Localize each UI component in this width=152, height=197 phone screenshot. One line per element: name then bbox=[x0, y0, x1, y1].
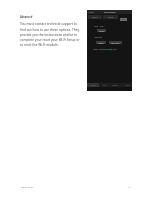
staticText: Scan bbox=[103, 84, 107, 86]
button[interactable]: Settings bbox=[110, 83, 121, 87]
staticText: Refresh bbox=[99, 30, 105, 32]
staticText: Advanced bbox=[120, 18, 127, 21]
staticText: WiFi Advanced bbox=[104, 11, 116, 13]
staticText: Home bbox=[91, 84, 96, 86]
button[interactable]: Scan bbox=[99, 83, 110, 87]
button[interactable]: Back bbox=[88, 11, 94, 14]
staticText: Update bbox=[98, 42, 104, 44]
button[interactable]: Status bbox=[88, 15, 102, 19]
staticText: SSID / Mac bbox=[94, 25, 104, 28]
button[interactable]: Advanced bbox=[120, 18, 127, 21]
button[interactable]: Update bbox=[96, 41, 106, 44]
staticText: Quick Start bbox=[21, 185, 34, 188]
button[interactable]: Refresh bbox=[97, 29, 106, 32]
staticText: Setup bbox=[108, 16, 114, 19]
staticText: You must contact technical support to fi… bbox=[20, 22, 81, 47]
button[interactable]: More bbox=[121, 83, 132, 87]
staticText: Advanced bbox=[20, 15, 33, 18]
staticText: < Back bbox=[88, 11, 94, 14]
button[interactable]: Setup bbox=[103, 15, 118, 19]
staticText: Team number bbox=[93, 48, 106, 51]
staticText: Change Wi-Fi bbox=[105, 48, 117, 51]
button[interactable]: Reset Radio bbox=[109, 41, 122, 44]
staticText: Settings bbox=[112, 84, 119, 86]
staticText: 14 bbox=[128, 185, 131, 188]
staticText: More bbox=[125, 84, 129, 86]
button[interactable]: Home bbox=[87, 83, 99, 87]
staticText: Upgrade bbox=[94, 36, 102, 39]
staticText: Status bbox=[92, 16, 98, 19]
staticText: Reset Radio bbox=[111, 42, 120, 44]
button[interactable]: Change Wi-Fi bbox=[105, 48, 117, 51]
